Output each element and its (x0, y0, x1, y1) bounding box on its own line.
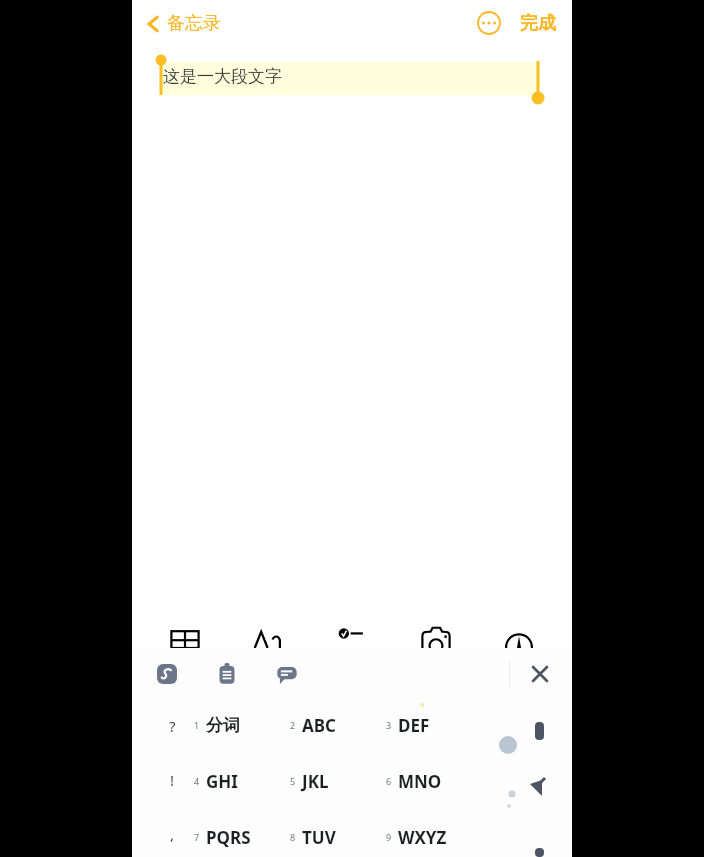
button[interactable]: 备忘录 (140, 8, 227, 39)
button[interactable]: ? (156, 714, 188, 738)
button[interactable]: Table (168, 620, 202, 648)
staticText: 9 (386, 831, 392, 843)
button[interactable]: Camera (419, 620, 453, 648)
button[interactable]: 8 (290, 824, 386, 850)
button[interactable]: 9 (386, 824, 482, 850)
button[interactable]: Draw (502, 620, 536, 648)
button[interactable]: 7 (194, 824, 290, 850)
staticText: 分词 (206, 715, 240, 736)
staticText: ? (169, 716, 176, 736)
staticText: 6 (386, 775, 392, 787)
staticText: 完成 (520, 12, 556, 35)
staticText: 1 (194, 719, 200, 731)
button[interactable]: Checklist (335, 620, 369, 648)
staticText: GHI (206, 770, 238, 793)
button[interactable]: 完成 (516, 8, 560, 39)
staticText: MNO (398, 770, 442, 793)
button[interactable]: Messages (272, 659, 302, 689)
staticText: 4 (194, 775, 200, 787)
button[interactable]: ! (156, 768, 188, 792)
button[interactable]: 5 (290, 768, 386, 794)
button[interactable]: 3 (386, 712, 482, 738)
staticText: , (170, 824, 175, 844)
staticText: PQRS (206, 826, 251, 849)
staticText: DEF (398, 714, 430, 737)
button[interactable]: Close keyboard (522, 656, 558, 692)
staticText: 这是一大段文字 (163, 66, 282, 87)
button[interactable]: 6 (386, 768, 482, 794)
staticText: ABC (302, 714, 336, 737)
staticText: 3 (386, 719, 392, 731)
button[interactable]: Text format (252, 620, 286, 648)
staticText: 5 (290, 775, 296, 787)
staticText: JKL (302, 770, 329, 793)
button[interactable]: 4 (194, 768, 290, 794)
staticText: 备忘录 (167, 12, 221, 35)
button[interactable]: More options (472, 6, 506, 40)
button[interactable]: 2 (290, 712, 386, 738)
staticText: ! (170, 770, 175, 790)
button[interactable]: Sogou input (152, 659, 182, 689)
staticText: TUV (302, 826, 336, 849)
staticText: 8 (290, 831, 296, 843)
staticText: 2 (290, 719, 296, 731)
staticText: 7 (194, 831, 200, 843)
button[interactable]: 1 (194, 712, 290, 738)
button[interactable]: , (156, 822, 188, 846)
button[interactable]: Clipboard (212, 659, 242, 689)
staticText: WXYZ (398, 826, 447, 849)
